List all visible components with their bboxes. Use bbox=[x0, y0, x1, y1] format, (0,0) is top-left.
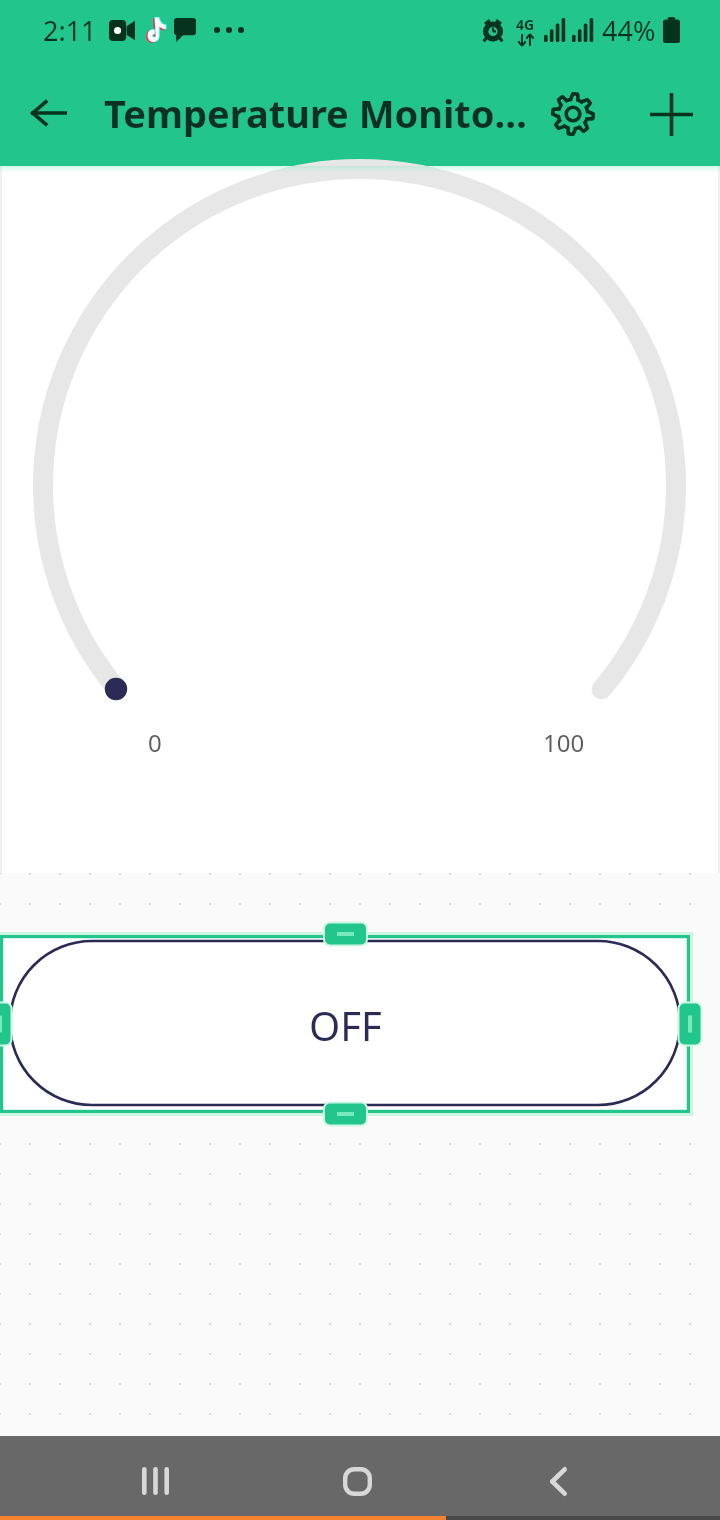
button[interactable]: Back bbox=[503, 1441, 613, 1520]
staticText: 100 bbox=[543, 726, 585, 759]
staticText: 44% bbox=[602, 12, 656, 49]
button[interactable]: Home bbox=[302, 1441, 412, 1520]
staticText: Temperature Monito… bbox=[104, 87, 528, 139]
staticText: 0 bbox=[148, 726, 162, 759]
button[interactable]: Settings bbox=[530, 84, 615, 144]
staticText: 4G bbox=[516, 15, 535, 34]
button[interactable]: Add bbox=[629, 84, 714, 144]
staticText: OFF bbox=[309, 998, 382, 1052]
staticText: 2:11 bbox=[43, 12, 97, 49]
button[interactable]: Recent apps bbox=[100, 1441, 210, 1520]
button[interactable]: Back bbox=[0, 60, 98, 166]
button[interactable]: OFF bbox=[0, 935, 690, 1113]
